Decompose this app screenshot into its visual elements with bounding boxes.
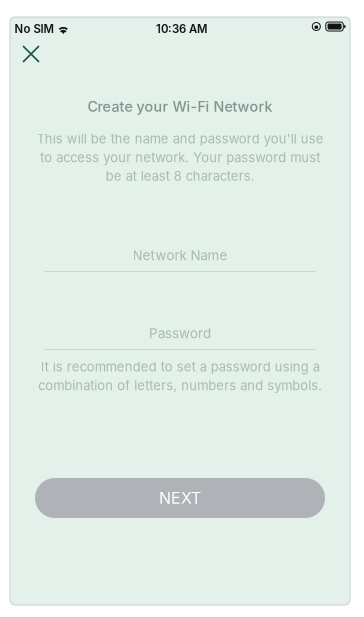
button[interactable]: NEXT — [35, 478, 325, 518]
staticText: NEXT — [159, 488, 201, 508]
staticText: No SIM — [14, 22, 53, 36]
staticText: This will be the name and password you'l… — [36, 131, 323, 184]
staticText: Password — [149, 325, 211, 341]
staticText: Create your Wi-Fi Network — [87, 98, 272, 115]
button[interactable]: Password — [44, 318, 316, 350]
staticText: It is recommended to set a password usin… — [38, 359, 322, 393]
button[interactable]: Network Name — [44, 240, 316, 272]
staticText: 10:36 AM — [156, 22, 207, 36]
staticText: Network Name — [132, 247, 227, 263]
button[interactable]: Close — [12, 35, 50, 73]
